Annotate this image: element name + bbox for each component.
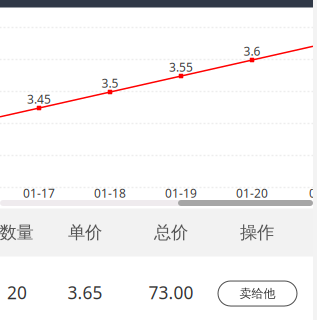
- staticText: 01-20: [236, 185, 268, 201]
- staticText: 3.65: [67, 281, 102, 304]
- staticText: 20: [7, 281, 27, 304]
- staticText: 总价: [154, 222, 188, 243]
- button[interactable]: 卖给他: [218, 281, 297, 306]
- staticText: 数量: [0, 222, 33, 243]
- staticText: 01-21: [309, 185, 317, 201]
- staticText: 操作: [240, 222, 274, 243]
- staticText: 单价: [68, 222, 102, 243]
- staticText: 01-18: [94, 185, 126, 201]
- staticText: 3.6: [243, 43, 260, 59]
- staticText: 01-19: [165, 185, 197, 201]
- staticText: 卖给他: [239, 286, 275, 301]
- staticText: 01-17: [23, 185, 55, 201]
- staticText: 3.45: [27, 91, 51, 107]
- staticText: 3.55: [169, 59, 193, 75]
- staticText: 3.5: [101, 75, 118, 91]
- staticText: 73.00: [148, 281, 193, 304]
